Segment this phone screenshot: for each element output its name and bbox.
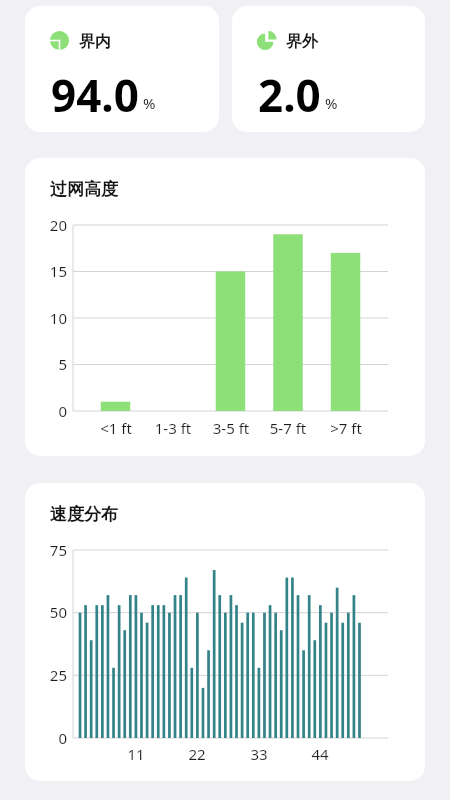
staticText: 25 (31, 665, 67, 685)
staticText: 5-7 ft (253, 418, 323, 438)
staticText: >7 ft (311, 418, 381, 438)
staticText: 3-5 ft (196, 418, 266, 438)
staticText: % (143, 93, 156, 113)
staticText: 速度分布 (50, 504, 118, 525)
staticText: 界外 (286, 32, 318, 52)
staticText: 5 (31, 354, 67, 374)
other: In bounds (50, 31, 69, 50)
staticText: 2.0 (258, 65, 321, 125)
staticText: 1-3 ft (138, 418, 208, 438)
staticText: <1 ft (81, 418, 151, 438)
staticText: 20 (31, 215, 67, 235)
button[interactable]: 过网高度 (25, 158, 425, 456)
staticText: 15 (31, 261, 67, 281)
other: Out of bounds (257, 31, 276, 50)
button[interactable]: Out of bounds (232, 6, 425, 132)
staticText: % (325, 93, 338, 113)
staticText: 94.0 (51, 65, 139, 125)
staticText: 33 (239, 744, 279, 764)
button[interactable]: In bounds (25, 6, 219, 132)
staticText: 界内 (79, 32, 111, 52)
staticText: 过网高度 (50, 179, 118, 200)
staticText: 50 (31, 602, 67, 622)
staticText: 10 (31, 308, 67, 328)
staticText: 0 (31, 728, 67, 748)
staticText: 11 (116, 744, 156, 764)
staticText: 0 (31, 401, 67, 421)
staticText: 22 (177, 744, 217, 764)
staticText: 75 (31, 540, 67, 560)
staticText: 44 (300, 744, 340, 764)
button[interactable]: 速度分布 (25, 483, 425, 781)
